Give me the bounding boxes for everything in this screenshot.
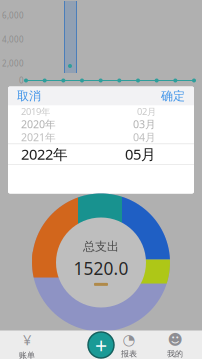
staticText: 2020年 — [21, 117, 56, 131]
button[interactable]: ☻ — [152, 331, 198, 358]
staticText: 0 — [19, 75, 24, 86]
staticText: 04月 — [133, 130, 156, 144]
staticText: ☻ — [167, 331, 182, 348]
staticText: 总支出 — [83, 239, 119, 254]
button[interactable]: ¥ — [4, 331, 50, 358]
staticText: 取消 — [17, 89, 41, 103]
button[interactable]: ◔ — [106, 331, 152, 358]
staticText: 05月 — [125, 144, 156, 164]
staticText: 我的 — [167, 349, 183, 359]
button[interactable]: 确定 — [152, 85, 194, 107]
staticText: 确定 — [161, 89, 185, 103]
staticText: 02月 — [137, 105, 156, 118]
staticText: ¥ — [23, 330, 31, 349]
staticText: 报表 — [121, 349, 137, 359]
staticText: 03月 — [133, 117, 156, 131]
staticText: 2019年 — [21, 105, 50, 118]
staticText: 账单 — [19, 350, 35, 359]
button[interactable]: 取消 — [8, 85, 50, 107]
button[interactable]: Add transaction — [88, 331, 114, 359]
staticText: + — [95, 331, 107, 359]
staticText: 2022年 — [21, 144, 68, 164]
staticText: 6,000 — [2, 10, 24, 21]
staticText: 2,000 — [2, 58, 24, 69]
staticText: 2021年 — [21, 130, 56, 144]
staticText: 1520.0 — [73, 257, 128, 280]
staticText: 4,000 — [2, 34, 24, 45]
staticText: ◔ — [122, 331, 135, 348]
